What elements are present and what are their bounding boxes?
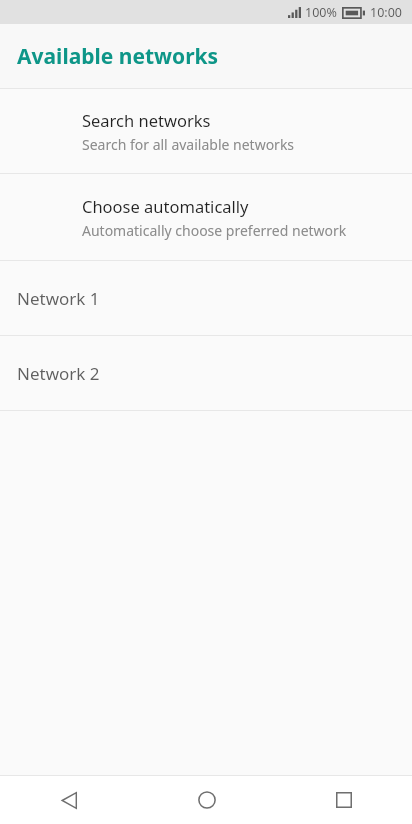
staticText: Choose automatically	[82, 195, 249, 217]
staticText: Automatically choose preferred network	[82, 221, 347, 240]
staticText: Network 2	[17, 362, 100, 385]
staticText: 10:00	[370, 4, 402, 21]
button[interactable]: Home	[138, 776, 275, 824]
button[interactable]: Network 2	[0, 336, 412, 410]
button[interactable]: Back	[0, 776, 138, 824]
staticText: Search for all available networks	[82, 135, 295, 154]
button[interactable]: Recent apps	[275, 776, 412, 824]
button[interactable]: Search networks	[0, 89, 412, 173]
button[interactable]: Choose automatically	[0, 174, 412, 260]
staticText: 100%	[305, 4, 337, 21]
staticText: Network 1	[17, 287, 100, 310]
staticText: Available networks	[17, 42, 219, 71]
button[interactable]: Network 1	[0, 261, 412, 335]
staticText: Search networks	[82, 109, 211, 131]
